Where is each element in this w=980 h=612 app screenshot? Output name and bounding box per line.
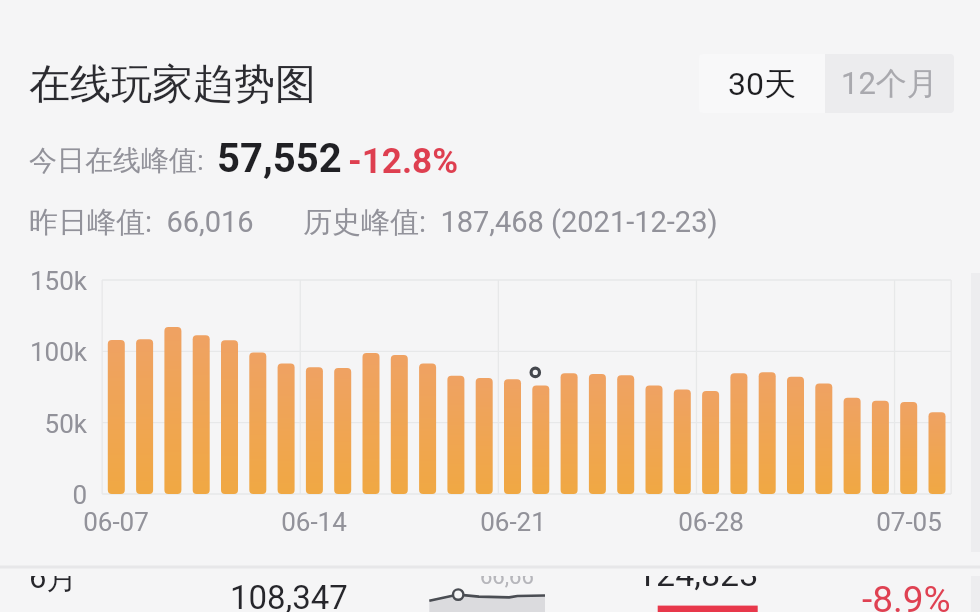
staticText: 57,552 xyxy=(217,135,342,182)
staticText: 在线玩家趋势图 xyxy=(29,59,316,111)
staticText: 6月 xyxy=(29,558,78,597)
staticText: 历史峰值: 187,468 (2021-12-23) xyxy=(303,204,718,241)
button[interactable]: 12个月 xyxy=(825,54,954,113)
staticText: 今日在线峰值: xyxy=(29,143,204,178)
staticText: 06-21 xyxy=(453,507,573,537)
staticText: 12个月 xyxy=(841,64,938,103)
staticText: 30天 xyxy=(728,64,796,104)
staticText: -12.8% xyxy=(348,141,459,182)
staticText: -8.9% xyxy=(862,578,951,612)
staticText: 50k xyxy=(0,409,87,439)
staticText: 108,347 xyxy=(230,578,348,612)
button[interactable]: 6月 xyxy=(0,552,980,612)
staticText: 124,823 xyxy=(637,554,759,594)
staticText: 07-05 xyxy=(849,507,969,537)
staticText: 0 xyxy=(0,480,87,510)
staticText: 66,66 xyxy=(480,564,534,590)
staticText: 06-28 xyxy=(651,507,771,537)
staticText: 06-07 xyxy=(56,507,176,537)
staticText: 150k xyxy=(0,266,87,296)
staticText: 06-14 xyxy=(254,507,374,537)
staticText: 昨日峰值: 66,016 xyxy=(29,204,254,241)
button[interactable]: 30天 xyxy=(699,54,825,113)
staticText: 100k xyxy=(0,337,87,367)
